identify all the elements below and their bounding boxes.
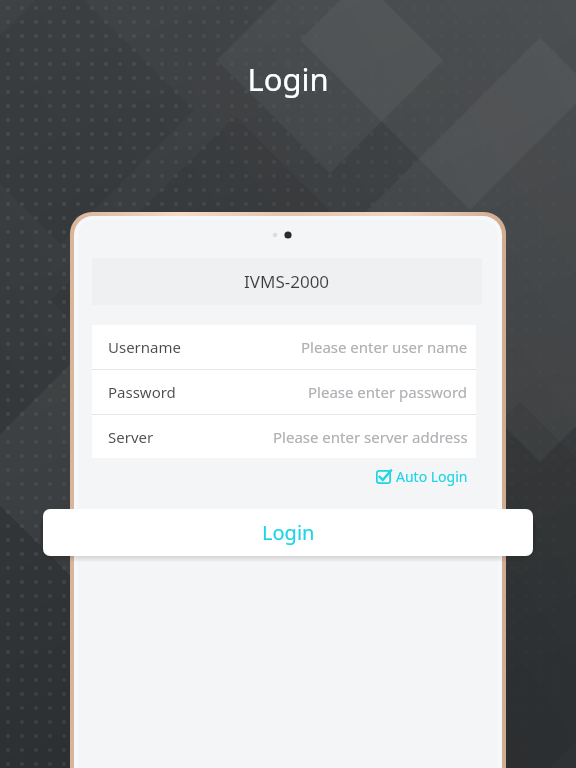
button[interactable]: Auto Login <box>374 464 470 489</box>
staticText: Login <box>262 519 315 546</box>
staticText: Please enter user name <box>301 337 468 357</box>
staticText: Password <box>108 382 176 402</box>
staticText: Please enter password <box>308 382 468 402</box>
button[interactable]: Login <box>43 509 533 556</box>
button[interactable]: Password <box>92 370 476 414</box>
button[interactable]: Username <box>92 325 476 369</box>
staticText: Username <box>108 337 181 357</box>
staticText: Login <box>0 58 576 100</box>
staticText: Please enter server address <box>273 427 468 447</box>
staticText: Auto Login <box>396 467 468 486</box>
button[interactable]: Server <box>92 415 476 458</box>
staticText: Server <box>108 427 154 447</box>
staticText: IVMS-2000 <box>244 270 330 293</box>
